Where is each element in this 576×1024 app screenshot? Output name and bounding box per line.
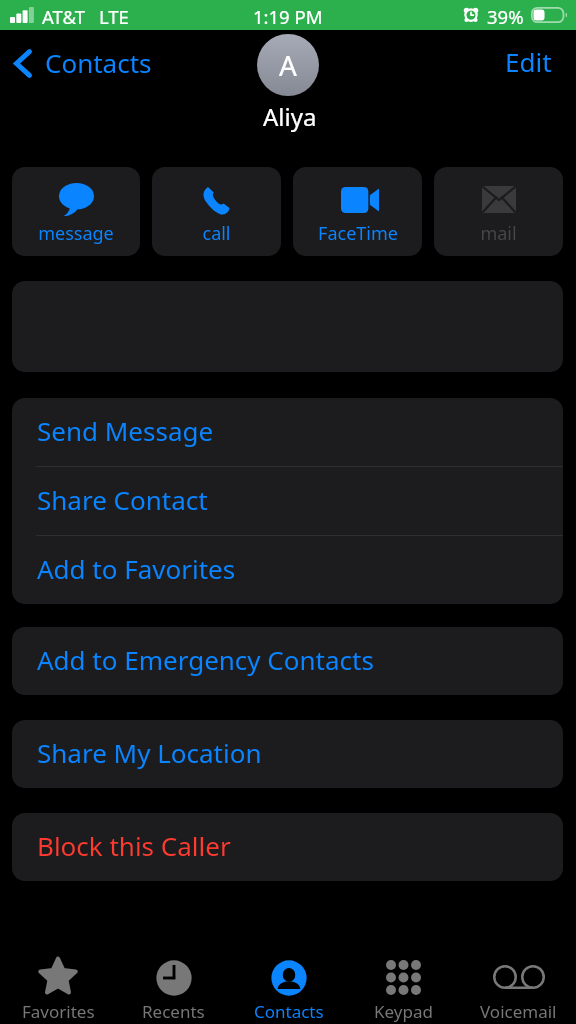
staticText: Share My Location	[37, 735, 262, 770]
staticText: Share Contact	[37, 482, 208, 517]
staticText: Send Message	[37, 413, 214, 448]
staticText: Recents	[142, 1000, 205, 1023]
button[interactable]: Voicemail	[461, 924, 576, 1024]
staticText: Favorites	[22, 1000, 95, 1023]
staticText: mail	[480, 221, 517, 246]
button[interactable]: Add to Favorites	[12, 536, 563, 604]
button[interactable]: message	[12, 167, 140, 256]
other: message	[59, 183, 94, 216]
staticText: Contacts	[254, 1000, 324, 1023]
button[interactable]: Back to Contacts	[6, 40, 160, 87]
button[interactable]: Recents	[116, 924, 231, 1024]
other: call	[201, 186, 230, 216]
button[interactable]: Share Contact	[12, 467, 563, 535]
other: Contacts	[271, 960, 307, 996]
staticText: LTE	[99, 4, 129, 29]
staticText: A	[279, 46, 297, 84]
staticText: Edit	[505, 44, 552, 79]
other: mail	[482, 186, 516, 213]
button[interactable]: Add to Emergency Contacts	[12, 627, 563, 695]
staticText: 39%	[487, 4, 524, 29]
other: FaceTime	[341, 187, 379, 213]
button[interactable]: Keypad	[346, 924, 461, 1024]
other: Voicemail	[493, 965, 545, 989]
staticText: 1:19 PM	[253, 4, 323, 29]
staticText: FaceTime	[318, 221, 398, 246]
other: Keypad	[386, 960, 422, 995]
button[interactable]: Contacts	[231, 924, 346, 1024]
button[interactable]: call	[152, 167, 281, 256]
button[interactable]: Share My Location	[12, 720, 563, 788]
staticText: AT&T	[42, 4, 86, 29]
button[interactable]: Send Message	[12, 398, 563, 466]
other: Back to Contacts	[14, 49, 32, 78]
staticText: Contacts	[45, 45, 152, 80]
staticText: message	[38, 221, 114, 246]
staticText: Voicemail	[480, 1000, 557, 1023]
other: Recents	[156, 960, 192, 996]
button[interactable]: FaceTime	[293, 167, 422, 256]
button[interactable]: mail	[434, 167, 563, 256]
button[interactable]: Favorites	[0, 924, 116, 1024]
staticText: Add to Favorites	[37, 551, 236, 586]
staticText: Block this Caller	[37, 828, 231, 863]
other: Favorites	[36, 956, 80, 997]
staticText: Keypad	[374, 1000, 433, 1023]
staticText: call	[202, 221, 231, 246]
button[interactable]: Edit	[497, 38, 560, 85]
button[interactable]: Block this Caller	[12, 813, 563, 881]
staticText: Add to Emergency Contacts	[37, 642, 374, 677]
staticText: Aliya	[263, 100, 317, 133]
